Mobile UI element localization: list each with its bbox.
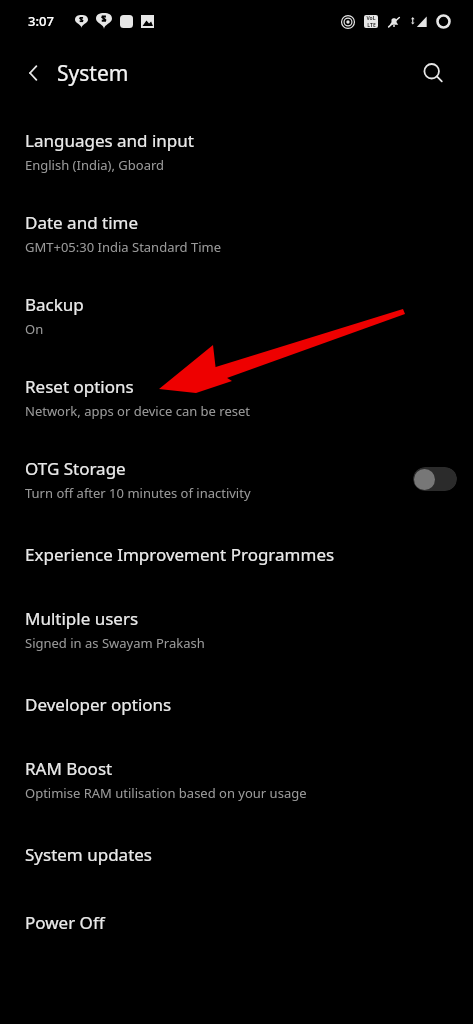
button[interactable]: RAM Boost: [0, 738, 473, 820]
staticText: Turn off after 10 minutes of inactivity: [25, 484, 251, 502]
staticText: Backup: [25, 293, 84, 316]
staticText: On: [25, 320, 44, 338]
staticText: Multiple users: [25, 607, 139, 630]
staticText: GMT+05:30 India Standard Time: [25, 238, 221, 256]
staticText: OTG Storage: [25, 457, 126, 480]
staticText: Signed in as Swayam Prakash: [25, 634, 205, 652]
button[interactable]: Experience Improvement Programmes: [0, 520, 473, 588]
staticText: Date and time: [25, 211, 139, 234]
button[interactable]: Power Off: [0, 888, 473, 956]
button[interactable]: Date and time: [0, 192, 473, 274]
staticText: Reset options: [25, 375, 134, 398]
staticText: Experience Improvement Programmes: [25, 543, 335, 566]
staticText: System updates: [25, 843, 153, 866]
staticText: System: [57, 59, 129, 88]
button[interactable]: Backup: [0, 274, 473, 356]
staticText: Languages and input: [25, 129, 194, 152]
staticText: Power Off: [25, 911, 105, 934]
staticText: RAM Boost: [25, 757, 113, 780]
button[interactable]: OTG Storage: [0, 438, 473, 520]
button[interactable]: Search: [415, 55, 451, 91]
button[interactable]: Reset options: [0, 356, 473, 438]
staticText: LTE: [367, 22, 376, 28]
staticText: Network, apps or device can be reset: [25, 402, 250, 420]
staticText: Developer options: [25, 693, 172, 716]
staticText: 3:07: [28, 12, 54, 30]
button[interactable]: Multiple users: [0, 588, 473, 670]
staticText: VoL: [366, 15, 376, 22]
staticText: English (India), Gboard: [25, 156, 165, 174]
button[interactable]: Languages and input: [0, 110, 473, 192]
button[interactable]: System updates: [0, 820, 473, 888]
button[interactable]: Developer options: [0, 670, 473, 738]
button[interactable]: OTG Storage toggle: [413, 467, 457, 491]
staticText: Optimise RAM utilisation based on your u…: [25, 784, 307, 802]
button[interactable]: Back: [16, 55, 52, 91]
